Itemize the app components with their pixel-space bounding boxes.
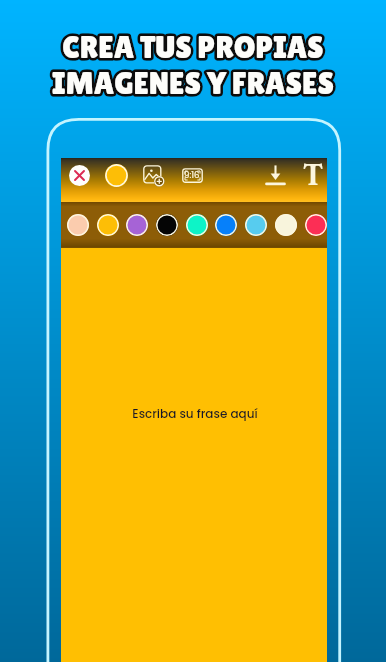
button[interactable]: Add image [142, 164, 164, 186]
button[interactable]: Colour swatch [124, 212, 150, 238]
button[interactable]: Colour swatch [95, 212, 121, 238]
staticText: CREA TUS PROPIAS [62, 29, 324, 65]
button[interactable]: Add text [298, 160, 328, 190]
button[interactable]: Aspect ratio 9 by 16 [181, 164, 203, 186]
staticText: T [303, 156, 324, 186]
staticText: IMAGENES Y FRASES [52, 65, 334, 101]
button[interactable]: Colour swatch [184, 212, 210, 238]
button[interactable]: Colour swatch [154, 212, 180, 238]
button[interactable]: Colour swatch [303, 212, 329, 238]
button[interactable]: Download [264, 164, 286, 186]
button[interactable]: Colour swatch [213, 212, 239, 238]
button[interactable]: Close [69, 165, 90, 186]
staticText: CREA TUS PROPIAS [62, 29, 324, 65]
staticText: IMAGENES Y FRASES [52, 65, 334, 101]
staticText: 9:16 [184, 169, 200, 181]
button[interactable]: Colour swatch [243, 212, 269, 238]
button[interactable]: Colour swatch [65, 212, 91, 238]
staticText: Escriba su frase aquí [132, 405, 258, 422]
button[interactable]: Colour swatch [273, 212, 299, 238]
button[interactable]: Background colour [105, 164, 128, 187]
